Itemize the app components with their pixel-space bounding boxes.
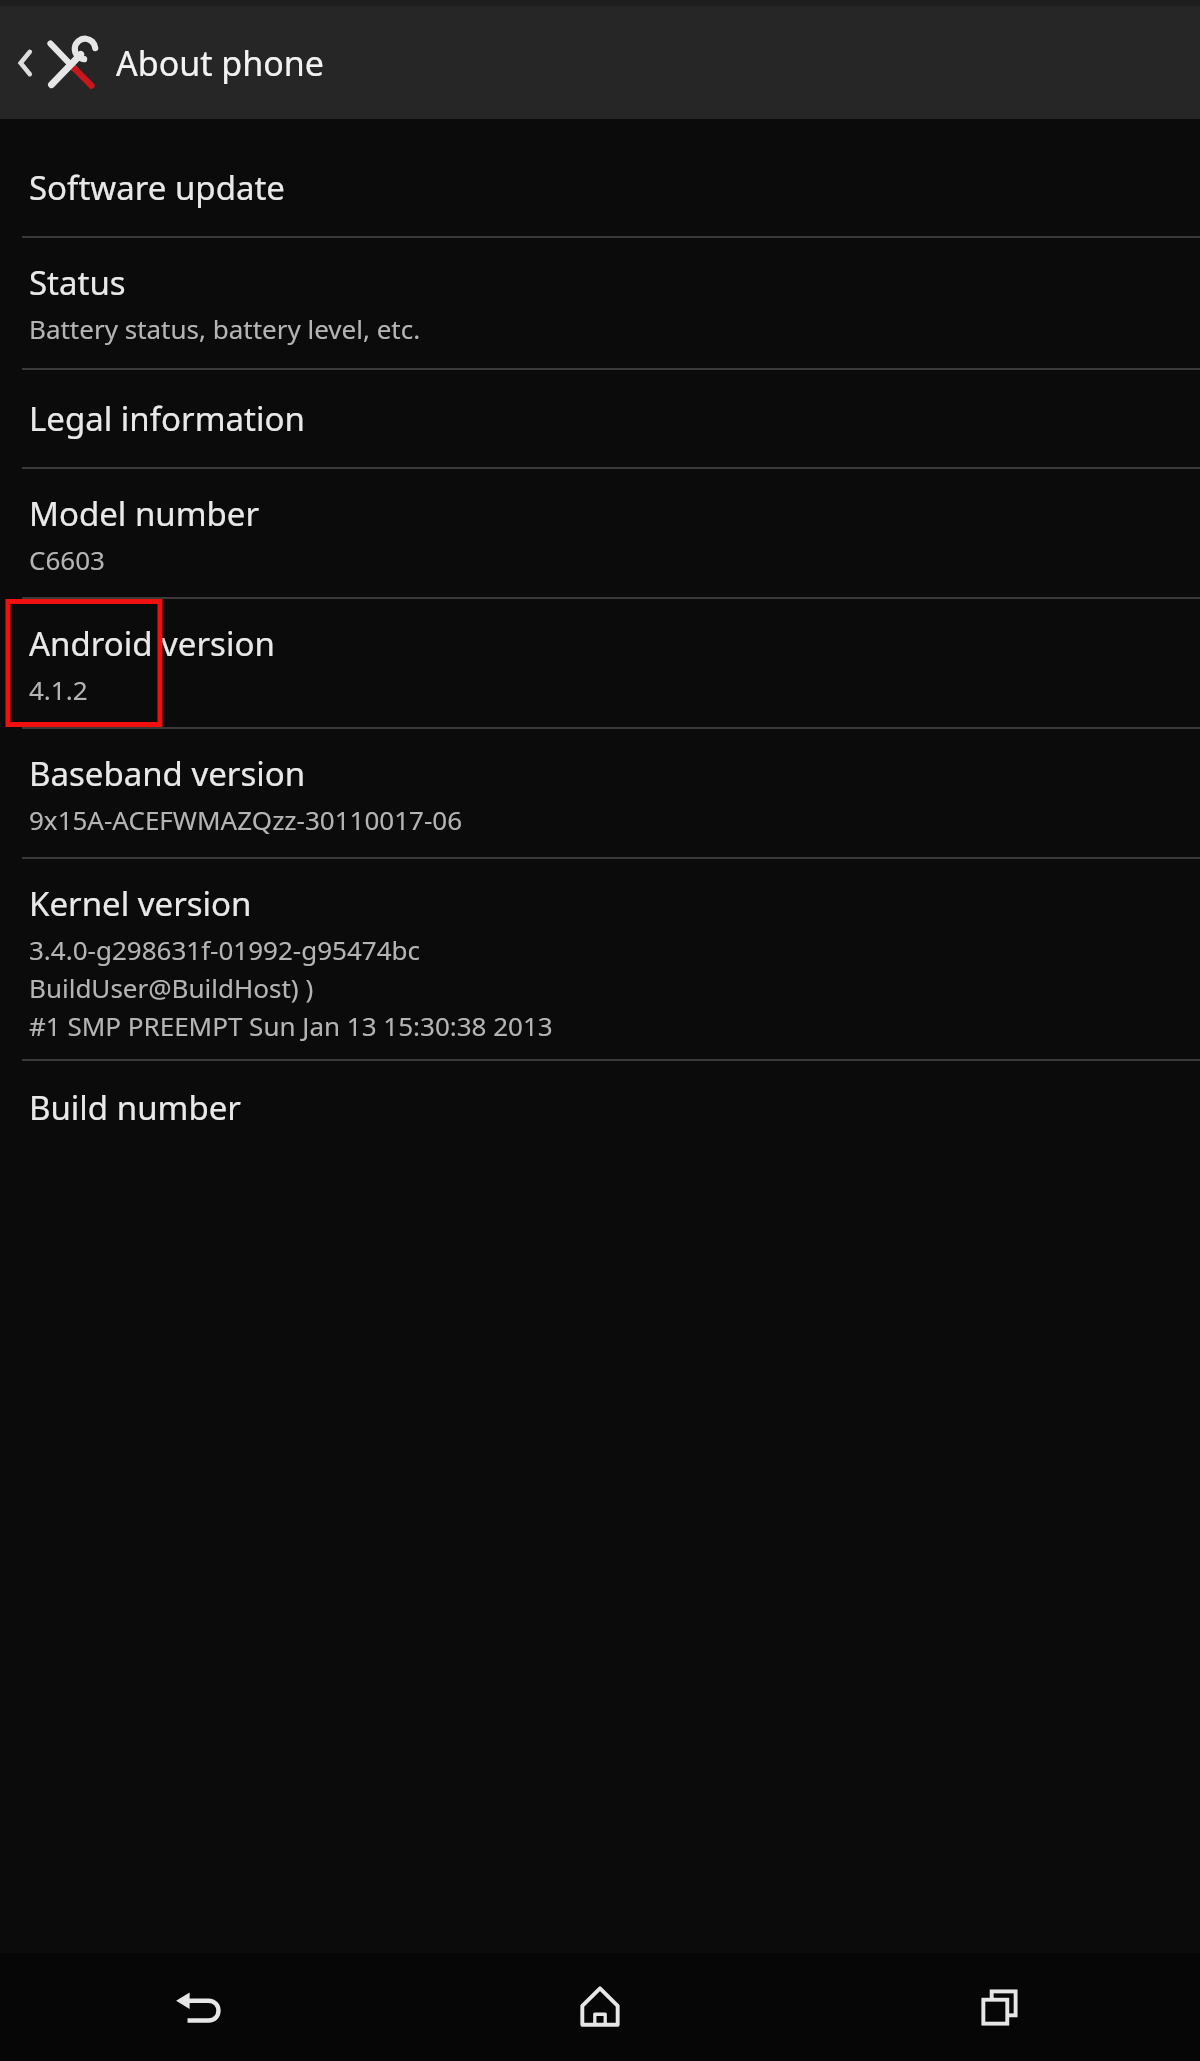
- staticText: About phone: [116, 40, 325, 86]
- button[interactable]: Home: [400, 1953, 800, 2061]
- button[interactable]: Back to Settings: [0, 6, 1200, 119]
- button[interactable]: Legal information: [0, 370, 1200, 467]
- staticText: Status: [29, 260, 126, 305]
- staticText: Baseband version: [29, 751, 306, 796]
- staticText: Battery status, battery level, etc.: [29, 311, 421, 346]
- staticText: Model number: [29, 491, 260, 536]
- button[interactable]: Back: [0, 1953, 400, 2061]
- button[interactable]: Kernel version: [0, 859, 1200, 1059]
- button[interactable]: Recent apps: [800, 1953, 1200, 2061]
- staticText: 3.4.0-g298631f-01992-g95474bc BuildUser@…: [29, 932, 553, 1043]
- button[interactable]: Software update: [0, 141, 1200, 236]
- button[interactable]: Build number: [0, 1061, 1200, 1130]
- staticText: C6603: [29, 542, 105, 577]
- button[interactable]: Status: [0, 238, 1200, 368]
- staticText: Legal information: [29, 396, 305, 441]
- staticText: Build number: [29, 1085, 241, 1130]
- button[interactable]: Model number: [0, 469, 1200, 597]
- staticText: Software update: [29, 165, 285, 210]
- button[interactable]: Baseband version: [0, 729, 1200, 857]
- staticText: Kernel version: [29, 881, 252, 926]
- staticText: Android version: [29, 621, 275, 666]
- staticText: 4.1.2: [29, 672, 88, 707]
- button[interactable]: Android version: [0, 599, 1200, 727]
- staticText: 9x15A-ACEFWMAZQzz-30110017-06: [29, 802, 463, 837]
